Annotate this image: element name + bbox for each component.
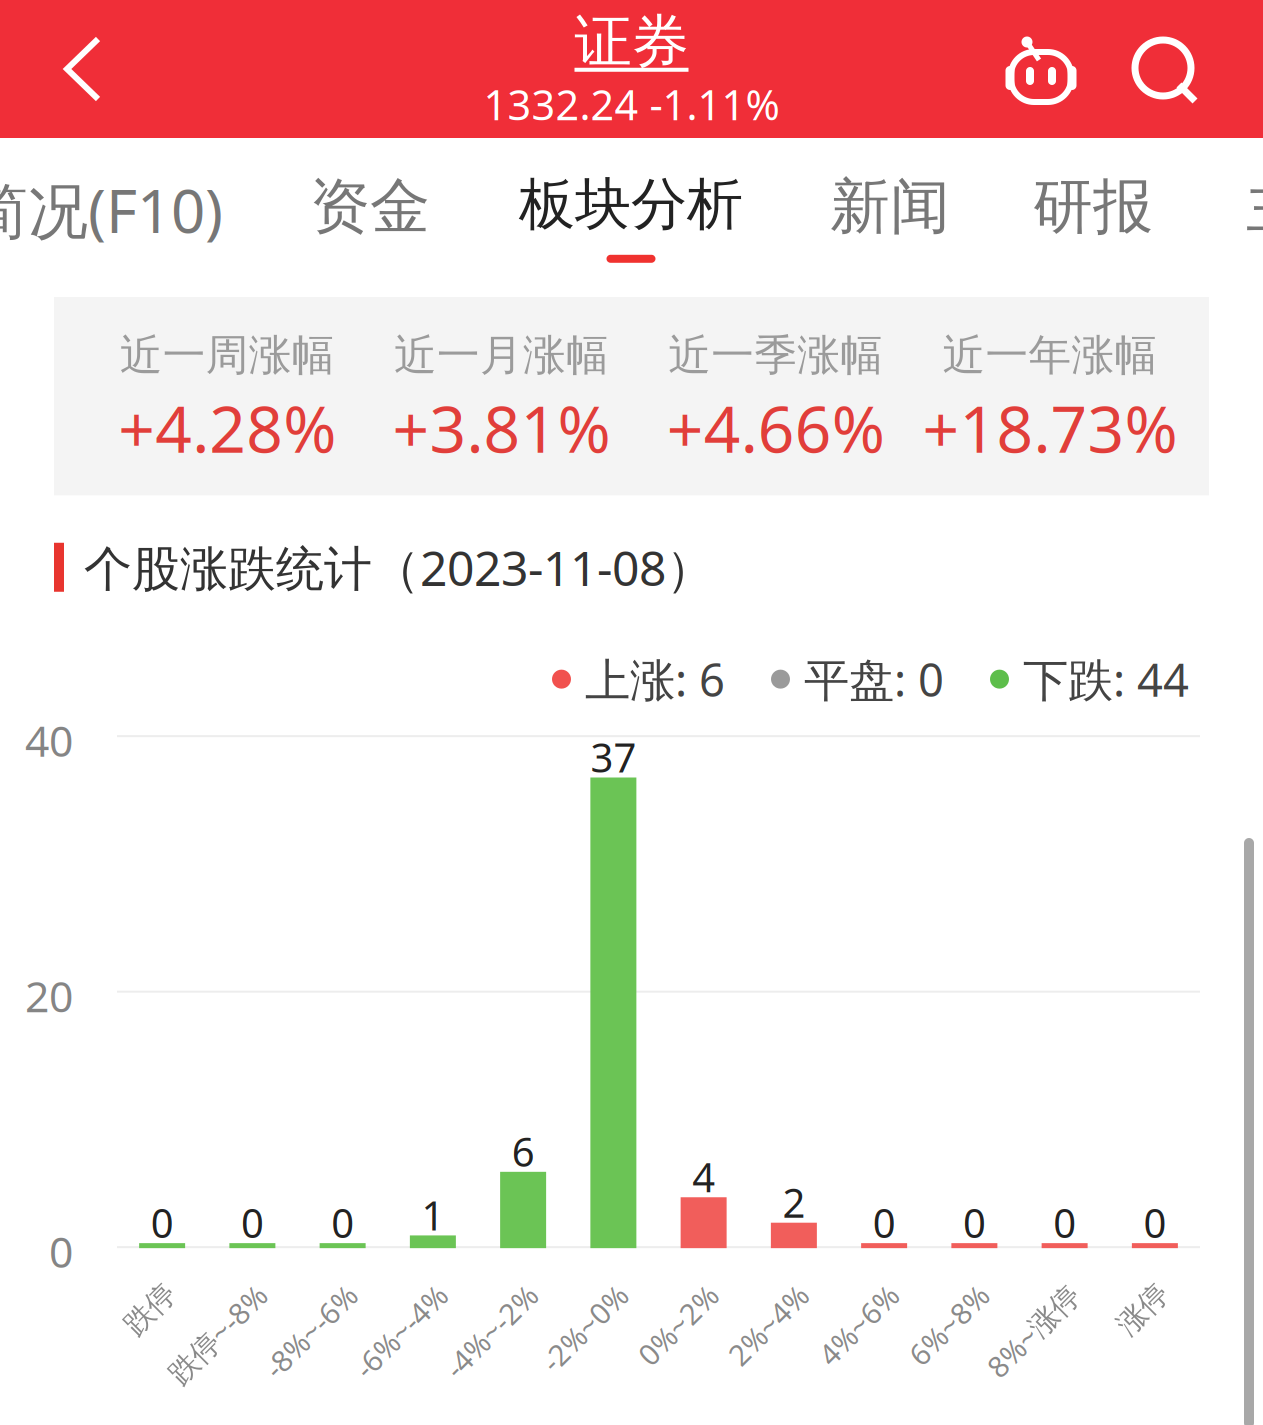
staticText: 证券 — [574, 6, 688, 77]
staticText: 简况(F10) — [0, 170, 223, 250]
staticText: 6%~8% — [871, 1276, 970, 1315]
button[interactable]: 板块分析 — [519, 170, 743, 263]
staticText: 2%~4% — [690, 1276, 789, 1315]
staticText: +4.66% — [667, 385, 885, 470]
staticText: 1332.24 -1.11% — [483, 77, 779, 132]
staticText: -6%~-4% — [311, 1276, 428, 1315]
button[interactable]: 资金 — [310, 170, 430, 244]
staticText: 板块分析 — [519, 170, 743, 239]
staticText: 跌停~-8% — [123, 1276, 248, 1315]
staticText: 0 — [49, 1223, 73, 1279]
staticText: +4.28% — [118, 385, 336, 470]
staticText: 涨停 — [1092, 1276, 1150, 1312]
staticText: 0 — [241, 1196, 264, 1249]
staticText: 新闻 — [830, 170, 950, 244]
staticText: +18.73% — [922, 385, 1177, 470]
button[interactable]: Back — [0, 0, 166, 138]
staticText: 0 — [151, 1196, 174, 1249]
staticText: 研报 — [1033, 170, 1153, 244]
staticText: 8%~涨停 — [944, 1276, 1060, 1315]
staticText: 0%~2% — [600, 1276, 699, 1315]
button[interactable]: 主力 — [1246, 170, 1263, 244]
staticText: 近一年涨幅 — [942, 329, 1157, 381]
staticText: 跌停 — [100, 1276, 158, 1312]
staticText: 1 — [421, 1188, 444, 1241]
staticText: 平盘: 0 — [804, 649, 944, 709]
button[interactable]: 新闻 — [830, 170, 950, 244]
staticText: -8%~-6% — [221, 1276, 338, 1315]
staticText: +3.81% — [392, 385, 610, 470]
staticText: -4%~-2% — [402, 1276, 519, 1315]
staticText: 0 — [331, 1196, 354, 1249]
staticText: 近一季涨幅 — [668, 329, 883, 381]
staticText: 4%~6% — [781, 1276, 880, 1315]
staticText: 40 — [25, 712, 73, 768]
staticText: 0 — [963, 1196, 986, 1249]
staticText: 上涨: 6 — [585, 649, 725, 709]
button[interactable]: AI assistant — [989, 14, 1093, 124]
staticText: -2%~0% — [501, 1276, 609, 1315]
staticText: 37 — [590, 730, 636, 783]
staticText: 0 — [873, 1196, 896, 1249]
staticText: 0 — [1053, 1196, 1076, 1249]
staticText: 资金 — [310, 170, 430, 244]
staticText: 6 — [512, 1125, 535, 1178]
staticText: 个股涨跌统计（2023-11-08） — [84, 535, 714, 599]
button[interactable]: 简况(F10) — [0, 170, 208, 250]
button[interactable]: 研报 — [1033, 170, 1153, 244]
button[interactable]: Search — [1119, 14, 1213, 124]
staticText: 2 — [782, 1176, 805, 1229]
staticText: 主力 — [1246, 170, 1263, 244]
staticText: 近一周涨幅 — [120, 329, 335, 381]
staticText: 4 — [692, 1150, 715, 1203]
staticText: 0 — [1143, 1196, 1166, 1249]
staticText: 20 — [25, 967, 73, 1024]
staticText: 下跌: 44 — [1023, 649, 1189, 709]
staticText: 近一月涨幅 — [394, 329, 609, 381]
